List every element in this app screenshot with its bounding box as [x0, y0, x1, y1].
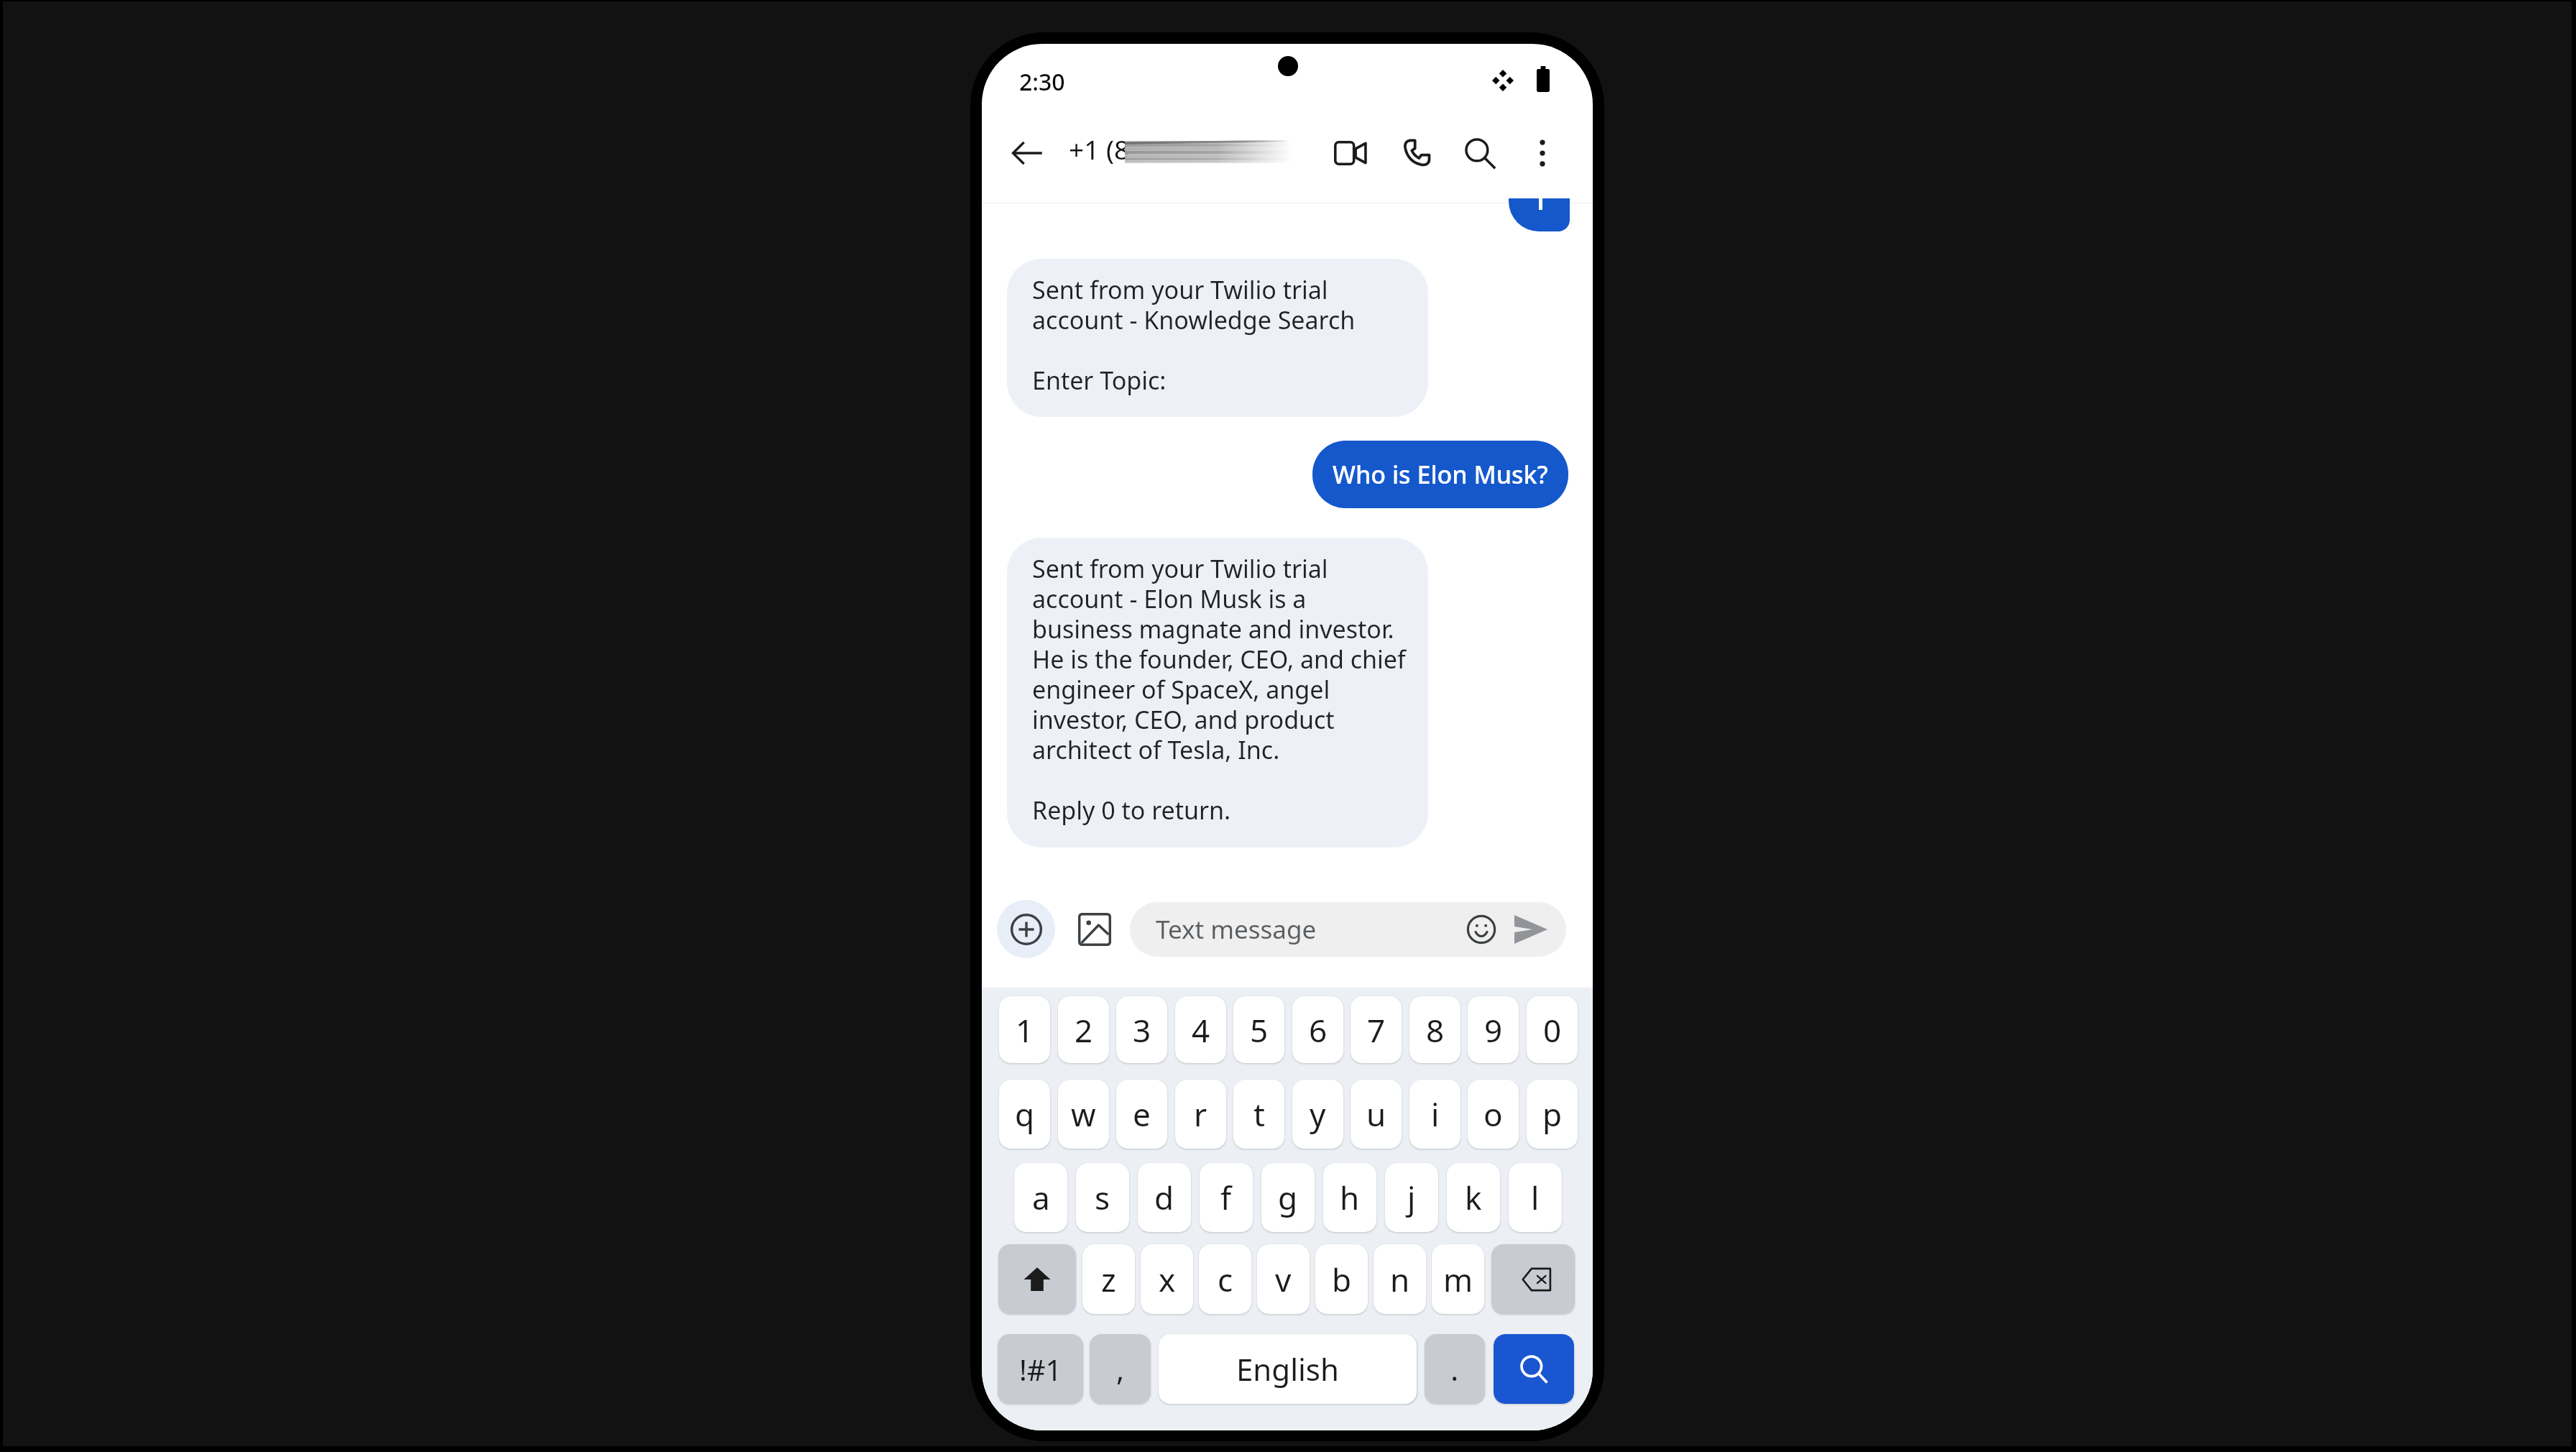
- button[interactable]: a: [1014, 1163, 1067, 1232]
- button[interactable]: 1: [999, 996, 1050, 1063]
- button[interactable]: More options: [1512, 123, 1573, 183]
- button[interactable]: Search: [1450, 123, 1510, 183]
- button[interactable]: 5: [1233, 996, 1284, 1063]
- staticText: k: [1465, 1176, 1482, 1219]
- staticText: w: [1071, 1093, 1096, 1136]
- button[interactable]: 4: [1175, 996, 1226, 1063]
- staticText: 0: [1543, 1008, 1562, 1052]
- staticText: g: [1278, 1176, 1298, 1219]
- button[interactable]: 3: [1116, 996, 1167, 1063]
- button[interactable]: 6: [1292, 996, 1343, 1063]
- button[interactable]: y: [1292, 1080, 1343, 1149]
- staticText: Who is Elon Musk?: [1333, 458, 1548, 491]
- button[interactable]: d: [1138, 1163, 1191, 1232]
- button[interactable]: b: [1315, 1244, 1368, 1314]
- staticText: u: [1366, 1093, 1386, 1136]
- staticText: 2: [1075, 1008, 1093, 1052]
- button[interactable]: l: [1509, 1163, 1562, 1232]
- staticText: b: [1332, 1258, 1352, 1301]
- staticText: c: [1218, 1258, 1233, 1301]
- button[interactable]: 2: [1058, 996, 1109, 1063]
- staticText: t: [1253, 1093, 1265, 1136]
- button[interactable]: t: [1233, 1080, 1284, 1149]
- button[interactable]: k: [1447, 1163, 1500, 1232]
- staticText: Sent from your Twilio trial account - El…: [1032, 552, 1406, 827]
- staticText: 9: [1484, 1008, 1503, 1052]
- button[interactable]: Who is Elon Musk?: [1312, 441, 1568, 508]
- button[interactable]: n: [1374, 1244, 1426, 1314]
- staticText: q: [1015, 1093, 1035, 1136]
- staticText: z: [1101, 1258, 1116, 1301]
- staticText: y: [1310, 1093, 1326, 1136]
- staticText: l: [1531, 1176, 1540, 1219]
- staticText: d: [1154, 1176, 1174, 1219]
- staticText: p: [1542, 1093, 1563, 1136]
- button[interactable]: c: [1199, 1244, 1251, 1314]
- staticText: s: [1095, 1176, 1110, 1219]
- button[interactable]: 9: [1468, 996, 1519, 1063]
- staticText: n: [1390, 1258, 1410, 1301]
- staticText: 7: [1367, 1008, 1386, 1052]
- button[interactable]: f: [1200, 1163, 1253, 1232]
- button[interactable]: e: [1116, 1080, 1167, 1149]
- staticText: h: [1340, 1176, 1360, 1219]
- button[interactable]: !#1: [998, 1334, 1083, 1404]
- button[interactable]: Shift: [998, 1244, 1076, 1314]
- button[interactable]: English: [1159, 1334, 1417, 1404]
- button[interactable]: Sent from your Twilio trial account - Kn…: [1007, 259, 1428, 417]
- staticText: x: [1159, 1258, 1176, 1301]
- staticText: f: [1220, 1176, 1232, 1219]
- staticText: !#1: [1019, 1350, 1062, 1389]
- button[interactable]: z: [1082, 1244, 1135, 1314]
- staticText: .: [1450, 1348, 1459, 1389]
- button[interactable]: .: [1425, 1334, 1485, 1404]
- button[interactable]: g: [1261, 1163, 1315, 1232]
- button[interactable]: q: [999, 1080, 1050, 1149]
- staticText: 4: [1192, 1008, 1210, 1052]
- button[interactable]: Call: [1386, 123, 1446, 183]
- staticText: e: [1133, 1093, 1151, 1136]
- button[interactable]: i: [1409, 1080, 1460, 1149]
- button[interactable]: Add attachment: [997, 900, 1055, 958]
- staticText: Text message: [1156, 912, 1466, 947]
- staticText: ,: [1116, 1348, 1125, 1389]
- button[interactable]: v: [1257, 1244, 1310, 1314]
- button[interactable]: ,: [1090, 1334, 1151, 1404]
- button[interactable]: s: [1076, 1163, 1129, 1232]
- staticText: a: [1032, 1176, 1050, 1219]
- button[interactable]: w: [1058, 1080, 1109, 1149]
- staticText: m: [1443, 1258, 1473, 1301]
- staticText: v: [1275, 1258, 1292, 1301]
- button[interactable]: 7: [1351, 996, 1402, 1063]
- staticText: 8: [1426, 1008, 1445, 1052]
- staticText: +1 (8: [1069, 131, 1130, 167]
- staticText: 3: [1133, 1008, 1151, 1052]
- button[interactable]: 0: [1527, 996, 1578, 1063]
- button[interactable]: o: [1468, 1080, 1519, 1149]
- button[interactable]: 8: [1409, 996, 1460, 1063]
- button[interactable]: Insert photo: [1065, 900, 1123, 958]
- button[interactable]: [1509, 198, 1570, 231]
- button[interactable]: h: [1323, 1163, 1376, 1232]
- button[interactable]: j: [1385, 1163, 1438, 1232]
- staticText: English: [1236, 1348, 1339, 1389]
- staticText: 1: [1016, 1008, 1034, 1052]
- button[interactable]: r: [1175, 1080, 1226, 1149]
- staticText: i: [1431, 1093, 1440, 1136]
- staticText: o: [1483, 1093, 1503, 1136]
- staticText: r: [1194, 1093, 1207, 1136]
- button[interactable]: x: [1141, 1244, 1193, 1314]
- button[interactable]: Backspace: [1491, 1244, 1575, 1314]
- staticText: 2:30: [1019, 66, 1065, 98]
- button[interactable]: u: [1351, 1080, 1402, 1149]
- staticText: j: [1407, 1176, 1416, 1219]
- button[interactable]: Search: [1494, 1334, 1574, 1404]
- button[interactable]: Sent from your Twilio trial account - El…: [1007, 538, 1428, 847]
- staticText: 6: [1309, 1008, 1328, 1052]
- button[interactable]: Text message: [1130, 902, 1566, 957]
- button[interactable]: p: [1527, 1080, 1578, 1149]
- button[interactable]: Back: [997, 123, 1057, 183]
- button[interactable]: Video call: [1320, 123, 1381, 183]
- staticText: Sent from your Twilio trial account - Kn…: [1032, 273, 1356, 397]
- button[interactable]: m: [1432, 1244, 1484, 1314]
